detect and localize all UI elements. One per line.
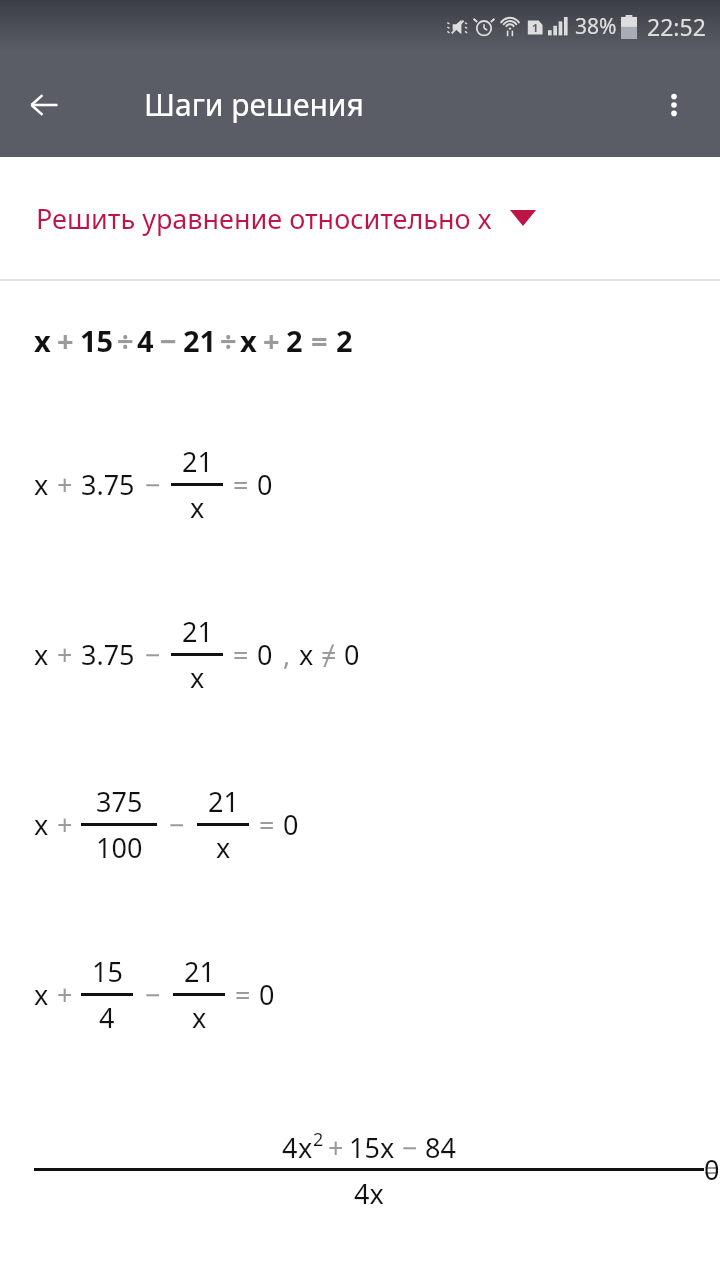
- staticText: x: [190, 659, 205, 696]
- button[interactable]: x: [0, 281, 720, 399]
- staticText: Шаги решения: [144, 84, 364, 125]
- button[interactable]: 4: [0, 1079, 720, 1259]
- button[interactable]: Back: [14, 75, 74, 135]
- staticText: 21: [182, 443, 213, 480]
- staticText: =: [233, 466, 249, 503]
- staticText: x: [190, 489, 205, 526]
- staticText: −: [145, 976, 161, 1013]
- staticText: 0: [257, 466, 273, 503]
- staticText: 2: [286, 321, 303, 360]
- staticText: +: [328, 1129, 344, 1166]
- staticText: +: [57, 466, 73, 503]
- staticText: 15: [80, 321, 114, 360]
- staticText: x: [34, 806, 49, 843]
- staticText: =: [235, 976, 251, 1013]
- staticText: +: [263, 321, 280, 360]
- staticText: x: [298, 1129, 313, 1166]
- button[interactable]: x: [0, 569, 720, 739]
- staticText: −: [169, 806, 185, 843]
- staticText: x: [299, 636, 314, 673]
- staticText: 0: [257, 636, 273, 673]
- staticText: −: [145, 636, 161, 673]
- staticText: ,: [283, 636, 291, 673]
- staticText: 4: [137, 321, 154, 360]
- staticText: 0: [259, 976, 275, 1013]
- button[interactable]: Решить уравнение относительно x: [0, 157, 720, 279]
- staticText: ÷: [220, 321, 237, 360]
- staticText: +: [57, 321, 74, 360]
- button[interactable]: x: [0, 399, 720, 569]
- staticText: +: [57, 976, 73, 1013]
- staticText: −: [145, 466, 161, 503]
- staticText: x: [34, 321, 51, 360]
- staticText: −: [160, 321, 177, 360]
- staticText: −: [402, 1129, 418, 1166]
- staticText: +: [57, 636, 73, 673]
- staticText: 84: [425, 1129, 456, 1166]
- staticText: x: [192, 999, 207, 1036]
- staticText: 2: [313, 1127, 324, 1152]
- staticText: Решить уравнение относительно x: [36, 200, 492, 237]
- staticText: ÷: [117, 321, 134, 360]
- staticText: 1: [532, 20, 539, 35]
- button[interactable]: x: [0, 909, 720, 1079]
- staticText: =: [233, 636, 249, 673]
- staticText: 21: [184, 953, 215, 990]
- staticText: x: [34, 976, 49, 1013]
- staticText: 0: [344, 636, 360, 673]
- staticText: 15x: [349, 1129, 395, 1166]
- staticText: 38%: [575, 12, 617, 41]
- button[interactable]: x: [0, 739, 720, 909]
- staticText: x: [216, 829, 231, 866]
- button[interactable]: More options: [646, 77, 702, 133]
- staticText: 375: [96, 783, 143, 820]
- staticText: 2: [336, 321, 353, 360]
- staticText: 4: [282, 1129, 298, 1166]
- staticText: 4x: [354, 1175, 384, 1212]
- staticText: =: [311, 321, 328, 360]
- staticText: 15: [92, 953, 123, 990]
- staticText: 0: [283, 806, 299, 843]
- staticText: 3.75: [81, 466, 135, 503]
- staticText: 21: [182, 613, 213, 650]
- staticText: 100: [96, 829, 143, 866]
- staticText: x: [240, 321, 257, 360]
- staticText: 21: [208, 783, 239, 820]
- staticText: ≠: [321, 636, 337, 673]
- staticText: +: [57, 806, 73, 843]
- staticText: x: [34, 466, 49, 503]
- staticText: 4: [99, 999, 115, 1036]
- staticText: =: [259, 806, 275, 843]
- staticText: 22:52: [647, 11, 706, 42]
- staticText: 21: [183, 321, 217, 360]
- staticText: 3.75: [81, 636, 135, 673]
- staticText: x: [34, 636, 49, 673]
